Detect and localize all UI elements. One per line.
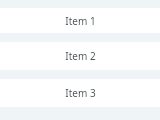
staticText: Item 2 — [65, 49, 96, 63]
button[interactable]: Item 2 — [0, 42, 160, 70]
button[interactable]: Item 1 — [0, 8, 160, 33]
staticText: Item 3 — [65, 86, 96, 100]
staticText: Item 1 — [65, 14, 96, 28]
button[interactable]: Item 3 — [0, 79, 160, 107]
